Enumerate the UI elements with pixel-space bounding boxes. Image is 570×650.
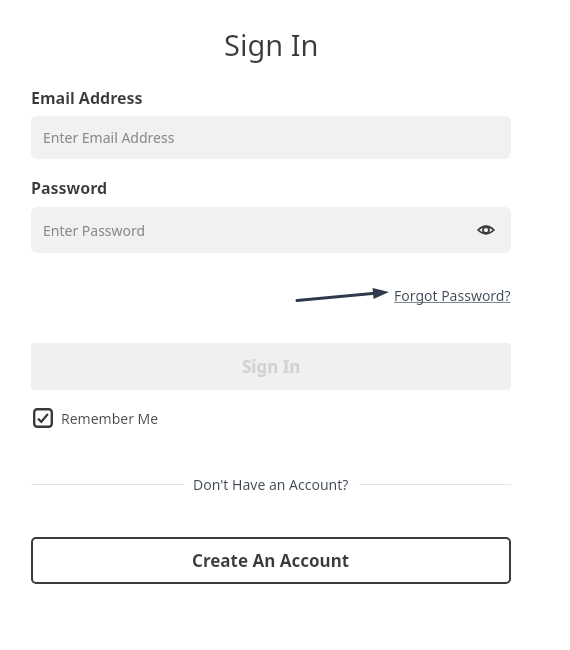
staticText: Sign In	[224, 25, 319, 64]
button[interactable]	[477, 221, 495, 239]
button[interactable]: Sign In	[31, 343, 511, 390]
button[interactable]: Forgot Password?	[394, 286, 511, 305]
staticText: Sign In	[242, 355, 301, 378]
staticText: Forgot Password?	[394, 286, 511, 305]
staticText: Create An Account	[192, 549, 350, 572]
staticText: Password	[31, 177, 108, 199]
staticText: Enter Password	[43, 221, 146, 240]
button[interactable]: Create An Account	[31, 537, 511, 584]
staticText: Enter Email Address	[43, 128, 175, 147]
staticText: Email Address	[31, 87, 143, 109]
button[interactable]: Remember Me	[33, 407, 159, 429]
button[interactable]: Enter Password	[31, 207, 511, 253]
button[interactable]: Enter Email Address	[31, 116, 511, 159]
staticText: Don't Have an Account?	[193, 475, 349, 494]
staticText: Remember Me	[61, 409, 159, 428]
